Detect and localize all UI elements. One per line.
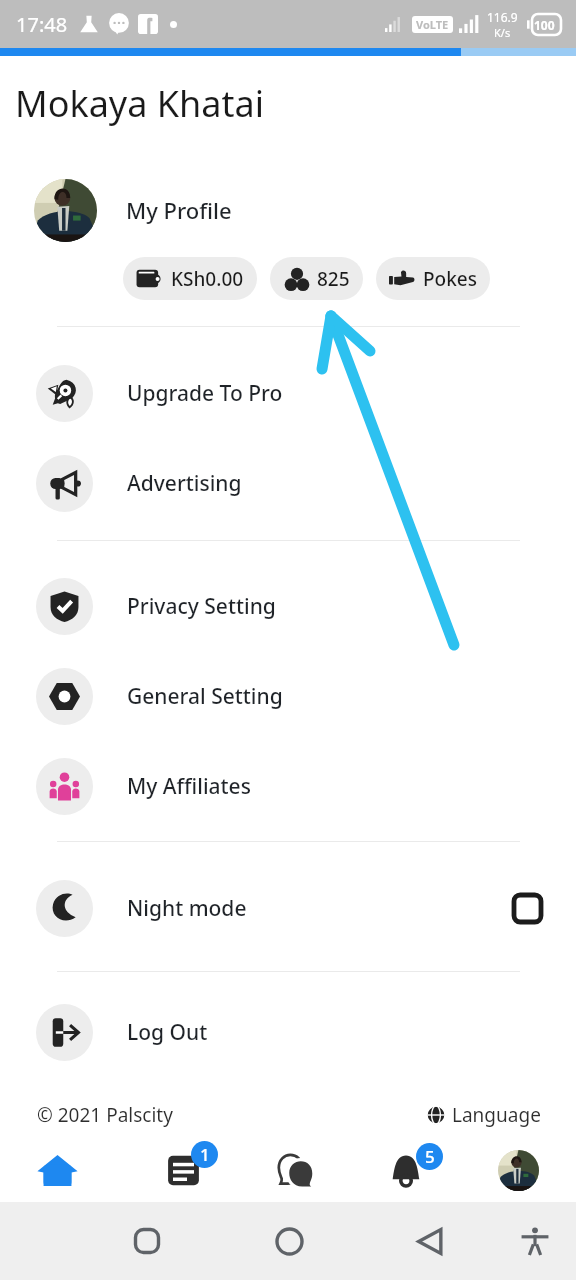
staticText: 17:48 bbox=[16, 11, 68, 38]
button[interactable]: Pokes bbox=[376, 257, 490, 300]
button[interactable]: Accessibility bbox=[511, 1217, 559, 1265]
staticText: Language bbox=[452, 1102, 541, 1128]
button[interactable]: General Setting bbox=[0, 651, 576, 741]
staticText: Privacy Setting bbox=[127, 592, 276, 621]
button[interactable]: Night mode toggle bbox=[507, 888, 547, 928]
staticText: Mokaya Khatai bbox=[15, 79, 264, 128]
button[interactable]: My Profile bbox=[0, 172, 576, 248]
button[interactable]: Profile bbox=[461, 1138, 576, 1202]
button[interactable]: Feed bbox=[115, 1138, 230, 1202]
staticText: My Profile bbox=[126, 195, 232, 225]
staticText: Advertising bbox=[127, 469, 242, 498]
button[interactable]: Back bbox=[405, 1217, 453, 1265]
staticText: VoLTE bbox=[416, 17, 449, 32]
button[interactable]: Language bbox=[426, 1102, 541, 1128]
button[interactable]: Privacy Setting bbox=[0, 561, 576, 651]
staticText: Night mode bbox=[127, 894, 247, 923]
staticText: General Setting bbox=[127, 682, 283, 711]
staticText: 100 bbox=[534, 17, 555, 33]
staticText: K/s bbox=[494, 25, 511, 40]
staticText: KSh0.00 bbox=[171, 266, 244, 292]
button[interactable]: Home bbox=[0, 1138, 115, 1202]
staticText: Pokes bbox=[423, 266, 477, 292]
button[interactable]: Notifications bbox=[346, 1138, 461, 1202]
button[interactable]: My Affiliates bbox=[0, 741, 576, 831]
button[interactable]: Upgrade To Pro bbox=[0, 348, 576, 438]
staticText: 5 bbox=[425, 1145, 435, 1168]
button[interactable]: Home bbox=[265, 1217, 313, 1265]
button[interactable]: Recents bbox=[123, 1217, 171, 1265]
button[interactable]: Wallet balance bbox=[123, 257, 257, 300]
staticText: 1 bbox=[200, 1143, 210, 1166]
staticText: 116.9 bbox=[487, 9, 518, 25]
button[interactable]: Log Out bbox=[0, 987, 576, 1077]
button[interactable]: Chat bbox=[230, 1138, 346, 1202]
staticText: 825 bbox=[317, 266, 350, 292]
staticText: My Affiliates bbox=[127, 772, 251, 801]
button[interactable]: Friends bbox=[270, 257, 363, 300]
staticText: © 2021 Palscity bbox=[37, 1102, 173, 1128]
staticText: Upgrade To Pro bbox=[127, 379, 283, 408]
staticText: Log Out bbox=[127, 1018, 208, 1047]
button[interactable]: Night mode bbox=[0, 863, 576, 953]
button[interactable]: Advertising bbox=[0, 438, 576, 528]
